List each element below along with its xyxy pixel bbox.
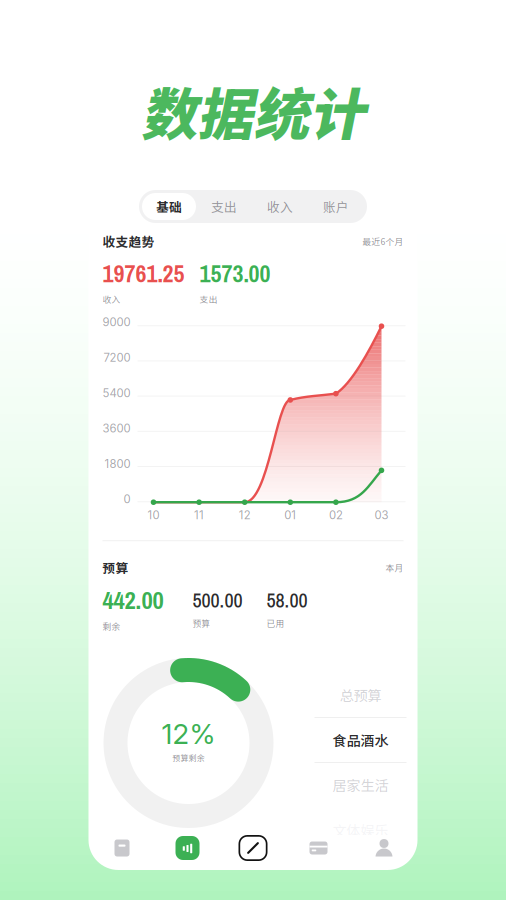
staticText: 9000: [102, 315, 130, 329]
staticText: 支出: [199, 293, 217, 305]
staticText: 基础: [156, 197, 182, 216]
button[interactable]: Add entry: [220, 830, 286, 866]
staticText: 10: [147, 508, 159, 522]
staticText: 账户: [323, 197, 349, 216]
staticText: 1800: [104, 457, 130, 471]
staticText: 1573.00: [199, 257, 270, 290]
staticText: 01: [284, 508, 296, 522]
button[interactable]: 食品酒水: [314, 718, 406, 762]
button[interactable]: 支出: [196, 193, 252, 220]
staticText: 文体娱乐: [332, 820, 388, 840]
staticText: 食品酒水: [332, 730, 388, 750]
staticText: 58.00: [266, 587, 307, 614]
staticText: 收入: [267, 197, 293, 216]
staticText: 已用: [266, 617, 284, 629]
staticText: 5400: [102, 386, 130, 400]
staticText: 最近6个月: [362, 235, 403, 247]
button[interactable]: Statistics: [155, 830, 220, 866]
staticText: 19761.25: [102, 257, 184, 290]
staticText: 居家生活: [332, 775, 388, 795]
staticText: 0: [123, 492, 130, 506]
staticText: 442.00: [102, 584, 163, 617]
staticText: 7200: [103, 351, 130, 364]
button[interactable]: Accounts: [286, 830, 351, 866]
button[interactable]: Ledger: [89, 830, 155, 866]
staticText: 预算: [102, 558, 128, 576]
button[interactable]: 文体娱乐: [314, 808, 406, 852]
staticText: 12%: [161, 717, 215, 751]
button[interactable]: 总预算: [314, 673, 406, 717]
staticText: 500.00: [192, 587, 242, 614]
staticText: 12: [239, 508, 251, 522]
staticText: 数据统计: [141, 70, 365, 151]
staticText: 02: [329, 508, 343, 522]
button[interactable]: 基础: [142, 193, 196, 220]
staticText: 本月: [385, 561, 403, 574]
button[interactable]: 居家生活: [314, 763, 406, 807]
button[interactable]: Profile: [351, 830, 417, 866]
staticText: 11: [194, 508, 204, 522]
staticText: 剩余: [102, 620, 120, 632]
button[interactable]: 账户: [308, 193, 364, 220]
staticText: 支出: [211, 197, 237, 216]
button[interactable]: 收入: [252, 193, 308, 220]
staticText: 预算剩余: [172, 752, 204, 763]
staticText: 03: [374, 508, 388, 522]
staticText: 3600: [102, 422, 130, 435]
staticText: 收入: [102, 293, 120, 305]
staticText: 总预算: [339, 685, 381, 705]
staticText: 预算: [192, 617, 210, 629]
staticText: 收支趋势: [102, 232, 154, 250]
